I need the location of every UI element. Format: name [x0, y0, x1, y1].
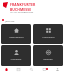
staticText: FRANKFURTER	[10, 2, 36, 7]
staticText: Mein Besuch	[9, 35, 24, 38]
button[interactable]: Mein Besuch	[1, 24, 31, 44]
button[interactable]: Profil	[51, 67, 64, 72]
button[interactable]: Nachrichten	[38, 67, 51, 72]
button[interactable]: Suche	[25, 67, 38, 72]
staticText: Gelände	[43, 57, 53, 60]
staticText: Jetzt live	[5, 19, 15, 22]
staticText: Programm	[42, 35, 55, 38]
button[interactable]: Programm	[12, 67, 25, 72]
staticText: 16.–20. OKTOBER 2025	[10, 11, 34, 14]
button[interactable]: Programm	[33, 24, 63, 44]
staticText: BUCHMESSE	[10, 7, 32, 11]
button[interactable]: Gelände	[33, 45, 63, 66]
staticText: Aussteller	[10, 57, 22, 60]
button[interactable]: Aussteller	[1, 45, 31, 66]
button[interactable]: Home	[0, 67, 12, 72]
